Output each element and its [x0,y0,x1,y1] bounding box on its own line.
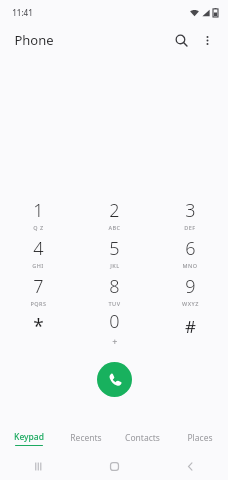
button[interactable]: Places [171,424,228,452]
button[interactable]: 1 [0,196,76,234]
staticText: Recents [70,432,102,444]
staticText: + [112,335,118,347]
button[interactable]: 2 [76,196,152,234]
staticText: 0 [109,309,120,334]
staticText: Keypad [14,431,44,443]
staticText: 1 [33,198,44,223]
staticText: * [33,313,44,339]
staticText: Places [187,432,213,444]
button[interactable]: 6 [152,234,228,272]
button[interactable]: Home [76,452,152,480]
button[interactable]: Call [97,362,132,397]
button[interactable]: 8 [76,272,152,310]
staticText: 8 [109,274,120,299]
staticText: WXYZ [182,300,199,307]
staticText: 4 [33,236,44,261]
staticText: TUV [108,300,121,307]
button[interactable]: Recents [0,452,76,480]
button[interactable]: 3 [152,196,228,234]
button[interactable]: 7 [0,272,76,310]
staticText: ABC [108,224,121,231]
button[interactable]: Back [152,452,228,480]
button[interactable]: # [152,310,228,348]
staticText: MNO [182,262,198,269]
button[interactable]: 4 [0,234,76,272]
staticText: Q Z [33,224,44,231]
button[interactable]: Keypad [0,424,57,452]
button[interactable]: More options [194,27,220,53]
staticText: Phone [14,31,54,49]
staticText: 11:41 [12,7,33,18]
staticText: Contacts [125,432,160,444]
staticText: JKL [110,262,120,269]
button[interactable]: 9 [152,272,228,310]
button[interactable]: 0 [76,310,152,348]
staticText: PQRS [30,300,47,307]
staticText: 3 [185,198,196,223]
staticText: 9 [185,274,196,299]
staticText: 5 [109,236,120,261]
button[interactable]: Search [168,27,194,53]
button[interactable]: Contacts [114,424,171,452]
button[interactable]: Recents [57,424,114,452]
staticText: 6 [185,236,196,261]
staticText: 7 [33,274,44,299]
staticText: GHI [32,262,44,269]
staticText: DEF [184,224,196,231]
staticText: # [185,315,196,338]
button[interactable]: 5 [76,234,152,272]
button[interactable]: * [0,310,76,348]
staticText: 2 [109,198,120,223]
